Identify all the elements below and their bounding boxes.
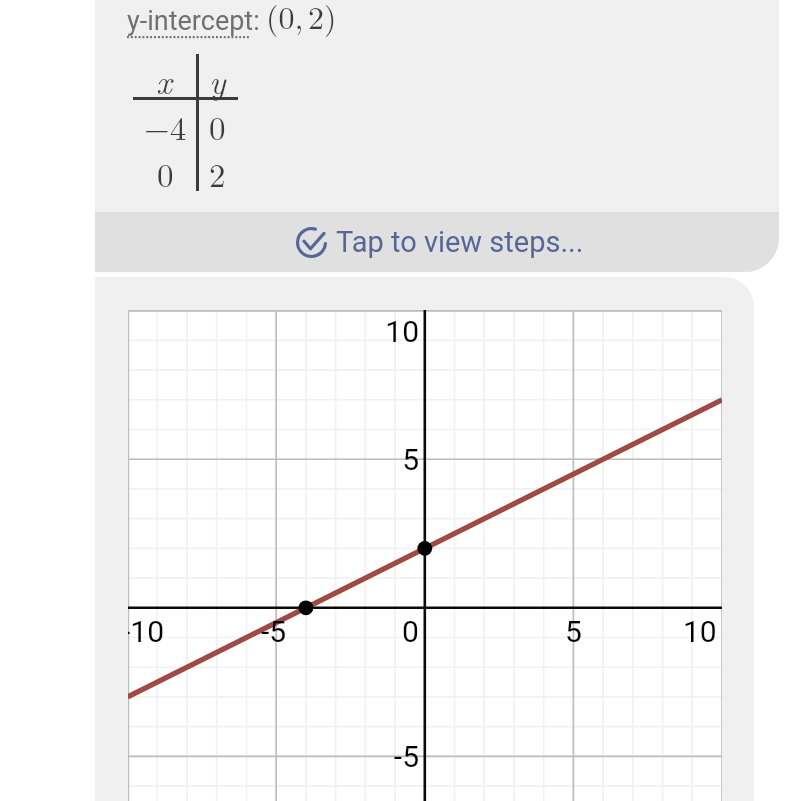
staticText: 10: [683, 614, 717, 649]
staticText: 10: [385, 314, 419, 349]
staticText: 0: [402, 614, 419, 649]
staticText: Tap to view steps...: [336, 225, 584, 259]
button[interactable]: View steps: [95, 212, 779, 272]
staticText: 2: [209, 150, 226, 197]
staticText: 5: [402, 442, 419, 477]
staticText: -5: [261, 614, 287, 649]
staticText: -5: [393, 739, 419, 774]
staticText: 0: [157, 150, 174, 197]
staticText: -10: [128, 614, 165, 649]
staticText: x: [156, 56, 172, 104]
staticText: y-intercept:: [127, 5, 260, 37]
other: View steps: [296, 227, 327, 258]
staticText: 2): [308, 0, 337, 38]
staticText: y: [209, 56, 226, 104]
staticText: (0,: [266, 0, 304, 38]
staticText: 0: [209, 103, 226, 150]
staticText: 5: [565, 614, 582, 649]
staticText: −4: [144, 103, 187, 150]
